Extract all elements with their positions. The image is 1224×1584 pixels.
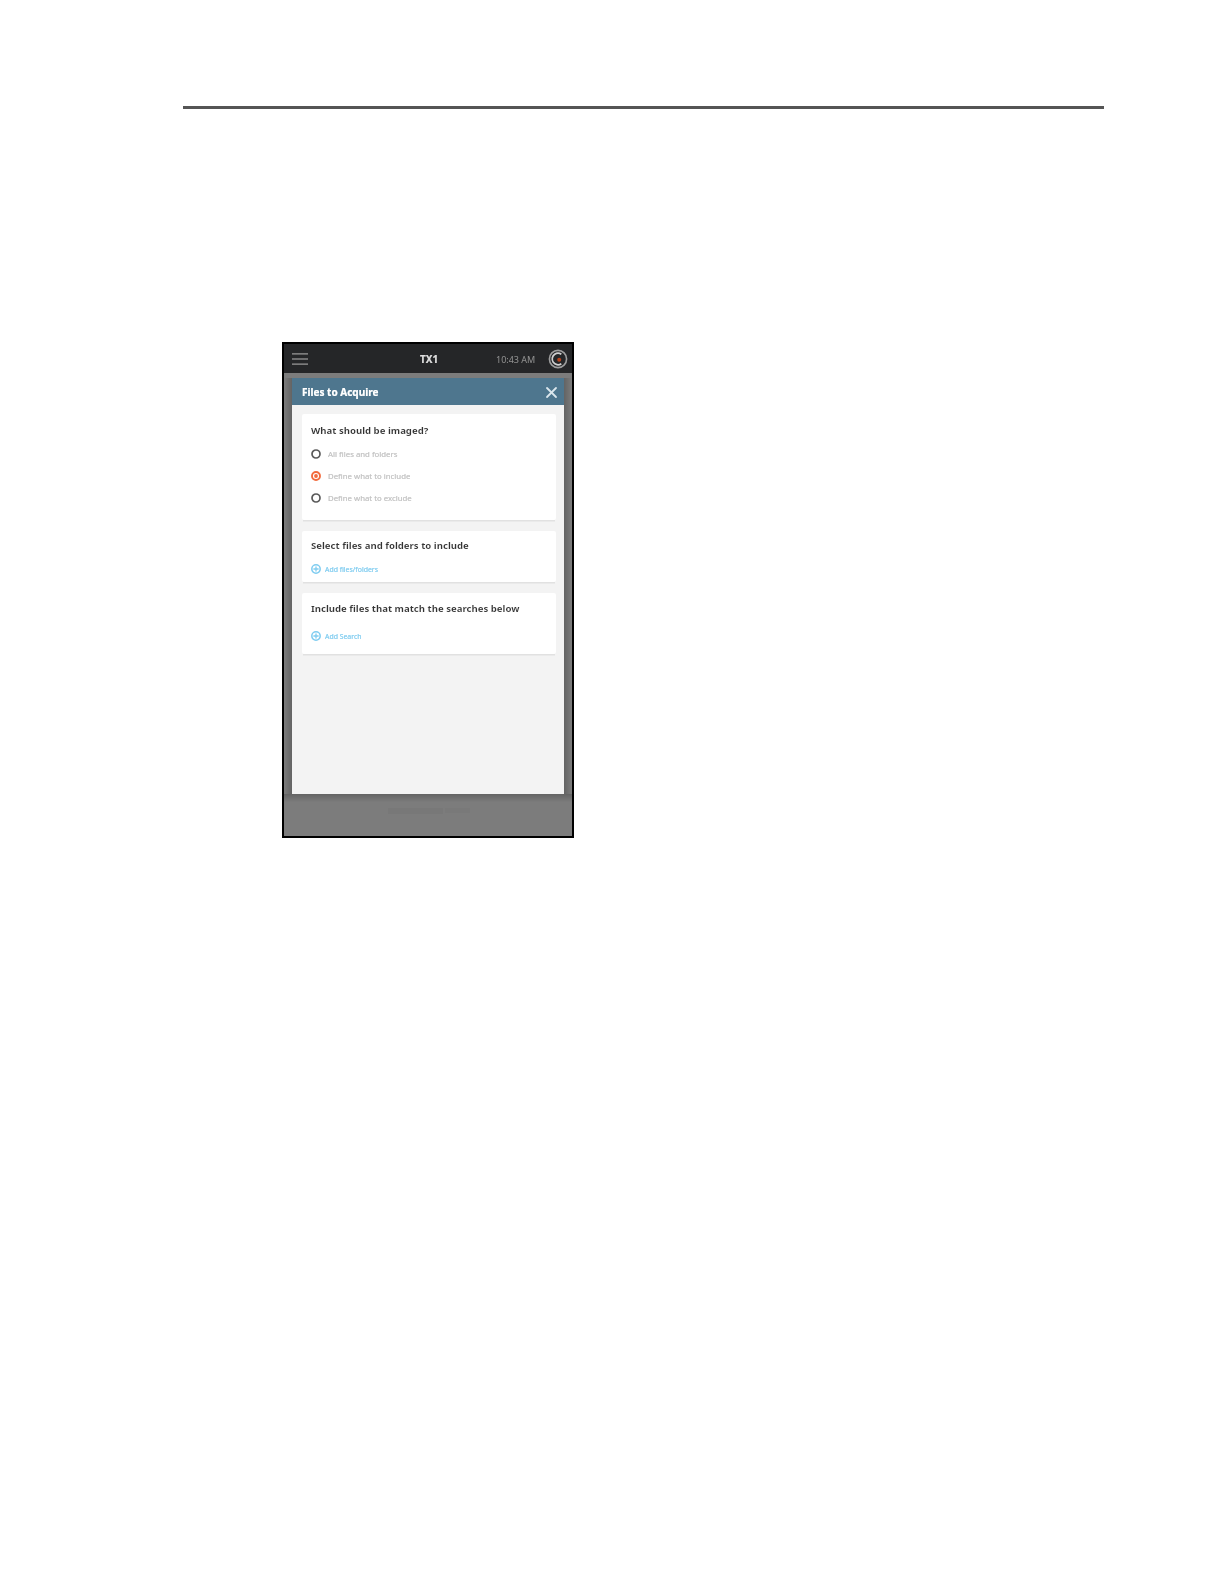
button[interactable]: Account (548, 349, 568, 369)
staticText: Select files and folders to include (311, 539, 469, 552)
staticText: Add files/folders (325, 565, 378, 574)
staticText: Include files that match the searches be… (311, 602, 520, 615)
button[interactable]: All files and folders (311, 447, 547, 461)
staticText: Add Search (325, 632, 362, 641)
button[interactable]: Define what to exclude (311, 491, 547, 505)
staticText: All files and folders (328, 449, 398, 460)
staticText: Files to Acquire (302, 385, 379, 399)
button[interactable]: Add files/folders (311, 562, 378, 576)
staticText: TX1 (420, 352, 439, 366)
staticText: Define what to include (328, 471, 411, 482)
button[interactable]: Menu (290, 349, 310, 369)
button[interactable]: Add Search (311, 629, 362, 643)
staticText: What should be imaged? (311, 424, 429, 437)
staticText: Define what to exclude (328, 493, 412, 504)
button[interactable]: Define what to include (311, 469, 547, 483)
button[interactable]: Close (542, 383, 560, 401)
staticText: 10:43 AM (496, 353, 536, 365)
